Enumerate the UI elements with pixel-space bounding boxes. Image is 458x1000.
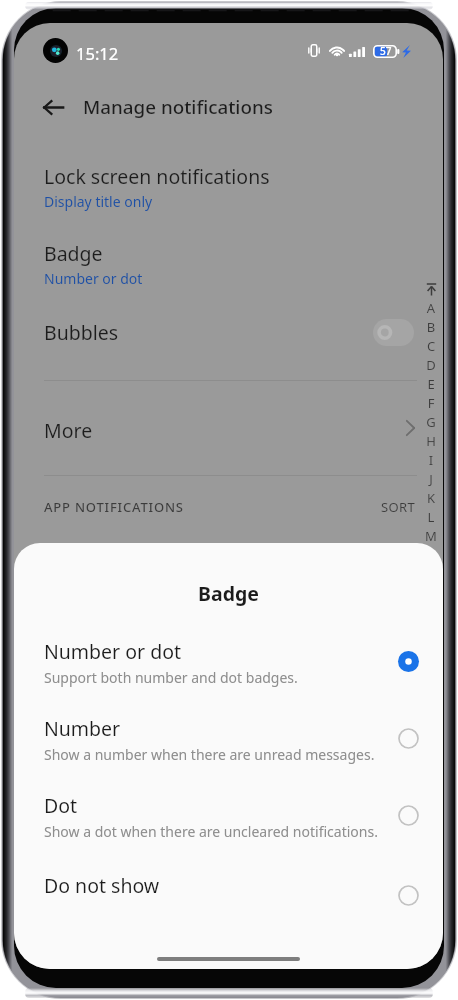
staticText: Bubbles — [44, 319, 119, 346]
staticText: B — [421, 318, 441, 337]
staticText: I — [421, 451, 441, 470]
staticText: APP NOTIFICATIONS — [44, 498, 184, 516]
staticText: SORT — [381, 498, 416, 516]
staticText: D — [421, 356, 441, 375]
button[interactable]: Dot — [14, 792, 443, 854]
staticText: Do not show — [44, 872, 160, 899]
button[interactable]: Badge — [14, 240, 443, 302]
staticText: Badge — [44, 240, 103, 267]
staticText: 15:12 — [76, 42, 119, 64]
staticText: F — [421, 394, 441, 413]
staticText: A — [421, 299, 441, 318]
staticText: G — [421, 413, 441, 432]
button[interactable]: Do not show — [14, 872, 443, 916]
staticText: 57 — [380, 44, 392, 58]
staticText: C — [421, 337, 441, 356]
staticText: Support both number and dot badges. — [44, 668, 298, 687]
staticText: Display title only — [44, 192, 153, 211]
staticText: Show a number when there are unread mess… — [44, 745, 375, 764]
other: Back — [43, 100, 64, 115]
staticText: Manage notifications — [83, 94, 273, 120]
staticText: L — [421, 508, 441, 527]
staticText: M — [421, 527, 441, 546]
button[interactable]: Number or dot — [14, 638, 443, 700]
staticText: Badge — [14, 580, 443, 607]
button[interactable]: Bubbles — [14, 304, 443, 360]
button[interactable]: More — [14, 391, 443, 469]
staticText: More — [44, 417, 93, 444]
staticText: Show a dot when there are uncleared noti… — [44, 822, 378, 841]
button[interactable]: Back — [19, 79, 87, 135]
staticText: Number or dot — [44, 269, 143, 288]
staticText: E — [421, 375, 441, 394]
staticText: H — [421, 432, 441, 451]
button[interactable]: SORT — [378, 492, 419, 522]
staticText: Number — [44, 715, 121, 742]
staticText: K — [421, 489, 441, 508]
button[interactable]: Lock screen notifications — [14, 163, 443, 225]
staticText: Lock screen notifications — [44, 163, 270, 190]
staticText: J — [421, 470, 441, 489]
staticText: Number or dot — [44, 638, 181, 665]
staticText: Dot — [44, 792, 78, 819]
button[interactable]: Number — [14, 715, 443, 777]
button[interactable]: Back — [14, 79, 443, 135]
